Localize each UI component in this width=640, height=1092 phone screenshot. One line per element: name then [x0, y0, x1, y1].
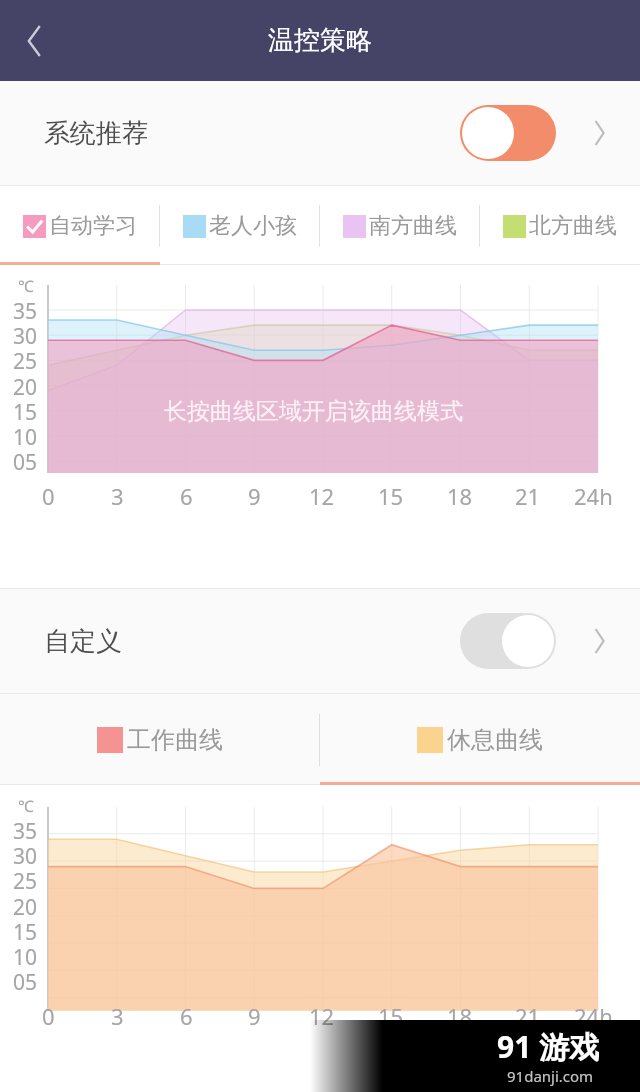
- staticText: 91danji.com: [507, 1066, 594, 1086]
- staticText: 15: [13, 918, 38, 947]
- staticText: 18: [447, 1001, 473, 1031]
- staticText: 工作曲线: [127, 725, 223, 755]
- staticText: 20: [13, 893, 38, 922]
- staticText: 21: [515, 1001, 541, 1031]
- staticText: 15: [378, 481, 404, 511]
- staticText: 长按曲线区域开启该曲线模式: [164, 397, 463, 426]
- staticText: 9: [248, 481, 261, 511]
- staticText: 3: [111, 1001, 124, 1031]
- staticText: 休息曲线: [447, 725, 543, 755]
- staticText: 自动学习: [49, 212, 137, 240]
- staticText: 20: [13, 373, 38, 402]
- staticText: 25: [13, 347, 38, 376]
- staticText: 21: [515, 481, 541, 511]
- staticText: 9: [248, 1001, 261, 1031]
- button[interactable]: 休息曲线: [320, 694, 640, 785]
- button[interactable]: Off: [460, 613, 556, 669]
- staticText: 24h: [574, 481, 613, 511]
- staticText: 30: [13, 322, 38, 351]
- button[interactable]: Open details: [582, 619, 626, 663]
- button[interactable]: Open details: [582, 111, 626, 155]
- staticText: 24h: [574, 1001, 613, 1031]
- button[interactable]: 北方曲线: [480, 186, 640, 265]
- staticText: 35: [13, 297, 38, 326]
- staticText: 10: [13, 943, 38, 972]
- staticText: 12: [309, 481, 335, 511]
- staticText: 3: [111, 481, 124, 511]
- staticText: 12: [309, 1001, 335, 1031]
- staticText: 91 游戏: [497, 1026, 600, 1067]
- staticText: 6: [180, 1001, 193, 1031]
- staticText: 0: [42, 481, 55, 511]
- staticText: 南方曲线: [369, 212, 457, 240]
- staticText: 系统推荐: [44, 117, 148, 150]
- button[interactable]: 系统推荐: [0, 81, 640, 185]
- button[interactable]: On: [460, 105, 556, 161]
- staticText: 05: [13, 448, 38, 477]
- staticText: 05: [13, 968, 38, 997]
- button[interactable]: 工作曲线: [0, 694, 320, 785]
- staticText: 35: [13, 817, 38, 846]
- staticText: 6: [180, 481, 193, 511]
- staticText: 18: [447, 481, 473, 511]
- staticText: 温控策略: [268, 24, 372, 57]
- button[interactable]: 自动学习: [0, 186, 160, 265]
- button[interactable]: 南方曲线: [320, 186, 480, 265]
- staticText: 25: [13, 867, 38, 896]
- staticText: 自定义: [44, 625, 122, 658]
- staticText: 北方曲线: [529, 212, 617, 240]
- staticText: ℃: [18, 275, 34, 297]
- button[interactable]: Back: [0, 8, 66, 74]
- staticText: 15: [378, 1001, 404, 1031]
- staticText: 30: [13, 842, 38, 871]
- staticText: 15: [13, 398, 38, 427]
- staticText: 老人小孩: [209, 212, 297, 240]
- button[interactable]: 老人小孩: [160, 186, 320, 265]
- staticText: 0: [42, 1001, 55, 1031]
- staticText: 10: [13, 423, 38, 452]
- button[interactable]: 自定义: [0, 589, 640, 693]
- staticText: ℃: [18, 795, 34, 817]
